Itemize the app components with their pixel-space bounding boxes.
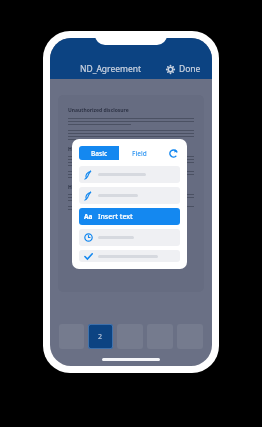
staticText: H [68,184,72,191]
staticText: Done [179,63,201,75]
staticText: Insert text [98,212,133,222]
button[interactable]: Settings [164,60,203,78]
other: Settings [166,65,175,74]
staticText: Unauthorized disclosure [68,107,129,114]
staticText: 2 [98,332,103,342]
button[interactable]: 2 [88,324,113,349]
button[interactable]: Aa [79,208,180,225]
staticText: H [68,146,72,153]
staticText: Field [132,149,147,158]
staticText: Basic [91,149,108,158]
button[interactable] [79,250,180,262]
button[interactable] [79,229,180,246]
button[interactable]: Reset [167,147,180,160]
button[interactable] [79,187,180,204]
button[interactable]: Basic [79,146,119,160]
button[interactable] [79,166,180,183]
staticText: ND_Agreement [80,63,142,75]
button[interactable]: Field [119,146,160,160]
staticText: Aa [84,212,93,221]
